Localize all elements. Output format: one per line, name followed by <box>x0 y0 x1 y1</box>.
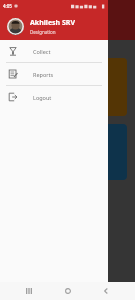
button[interactable]: Profile photo <box>7 18 24 35</box>
button[interactable]: Logout <box>0 86 108 108</box>
button[interactable] <box>8 58 127 116</box>
staticText: Akhilesh SRV <box>30 18 75 28</box>
button[interactable]: Reports <box>0 63 108 85</box>
staticText: Logout <box>33 94 52 101</box>
staticText: Designation <box>30 29 56 35</box>
button[interactable]: Collect <box>0 40 108 62</box>
button[interactable]: 4:05 <box>0 0 108 40</box>
button[interactable]: Back <box>97 282 115 300</box>
button[interactable]: Recents <box>20 282 38 300</box>
button[interactable]: Home <box>59 282 77 300</box>
staticText: Collect <box>33 48 51 55</box>
staticText: 4:05 <box>3 3 12 9</box>
staticText: Reports <box>33 71 54 78</box>
button[interactable] <box>8 124 127 180</box>
